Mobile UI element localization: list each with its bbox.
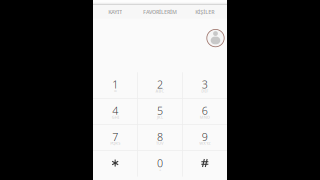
button[interactable]: 6 [183,98,227,124]
button[interactable]: 3 [183,72,227,98]
button[interactable]: FAVORİLERİM [138,5,182,19]
button[interactable]: 9 [183,125,227,150]
staticText: JKL [157,114,163,120]
button[interactable]: 8 [138,125,182,150]
staticText: WXYZ [199,141,210,146]
button[interactable]: Pound [183,151,227,177]
button[interactable]: KAYIT [93,5,138,19]
button[interactable]: 0 [138,151,182,177]
button[interactable]: 1 [93,72,137,98]
button[interactable]: Contacts [207,29,224,47]
staticText: 3 [202,77,208,91]
staticText: 4 [112,103,118,118]
button[interactable]: KİŞİLER [182,5,227,19]
staticText: PQRS [110,141,120,146]
staticText: KİŞİLER [195,8,214,15]
staticText: 9 [202,130,208,144]
staticText: 7 [112,130,118,144]
staticText: 5 [157,103,163,118]
staticText: + [159,167,161,172]
button[interactable]: Star [93,151,137,177]
staticText: MNO [200,114,210,120]
staticText: TUV [156,141,164,146]
staticText: ∞ [114,89,117,93]
button[interactable]: 2 [138,72,182,98]
staticText: 8 [157,130,163,144]
staticText: 2 [157,77,163,91]
staticText: KAYIT [108,8,122,15]
staticText: GHI [112,114,119,120]
button[interactable]: 5 [138,98,182,124]
button[interactable]: 7 [93,125,137,150]
staticText: 6 [202,103,208,118]
staticText: ABC [155,88,164,93]
staticText: 0 [157,156,163,170]
staticText: FAVORİLERİM [143,8,177,15]
staticText: DEF [201,88,208,93]
staticText: 1 [112,77,118,91]
button[interactable]: 4 [93,98,137,124]
